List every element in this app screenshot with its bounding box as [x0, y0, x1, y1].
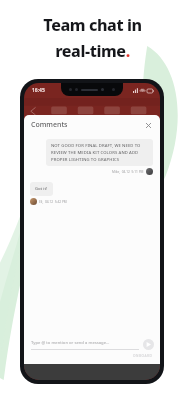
button[interactable]: NOT GOOD FOR FINAL DRAFT, WE NEED TO REV… — [46, 139, 153, 175]
staticText: Type @ to mention or send a message... — [31, 340, 110, 346]
staticText: Eli, 04.12 5:42 PM — [39, 200, 67, 204]
staticText: ONBOARD — [133, 354, 153, 358]
staticText: NOT GOOD FOR FINAL DRAFT, WE NEED TO REV… — [51, 143, 148, 162]
staticText: Team chat in — [43, 14, 142, 36]
staticText: 16:45 — [32, 87, 45, 94]
button[interactable]: Send message — [143, 339, 154, 350]
button[interactable]: Close comments — [143, 120, 153, 130]
staticText: real-time. — [55, 40, 130, 62]
staticText: Comments — [31, 120, 68, 130]
button[interactable]: Got it! — [30, 182, 138, 205]
staticText: Got it! — [35, 186, 48, 192]
staticText: Mike, 04.12 5:11 PM — [112, 170, 144, 174]
button[interactable]: Type @ to mention or send a message... — [31, 339, 154, 350]
